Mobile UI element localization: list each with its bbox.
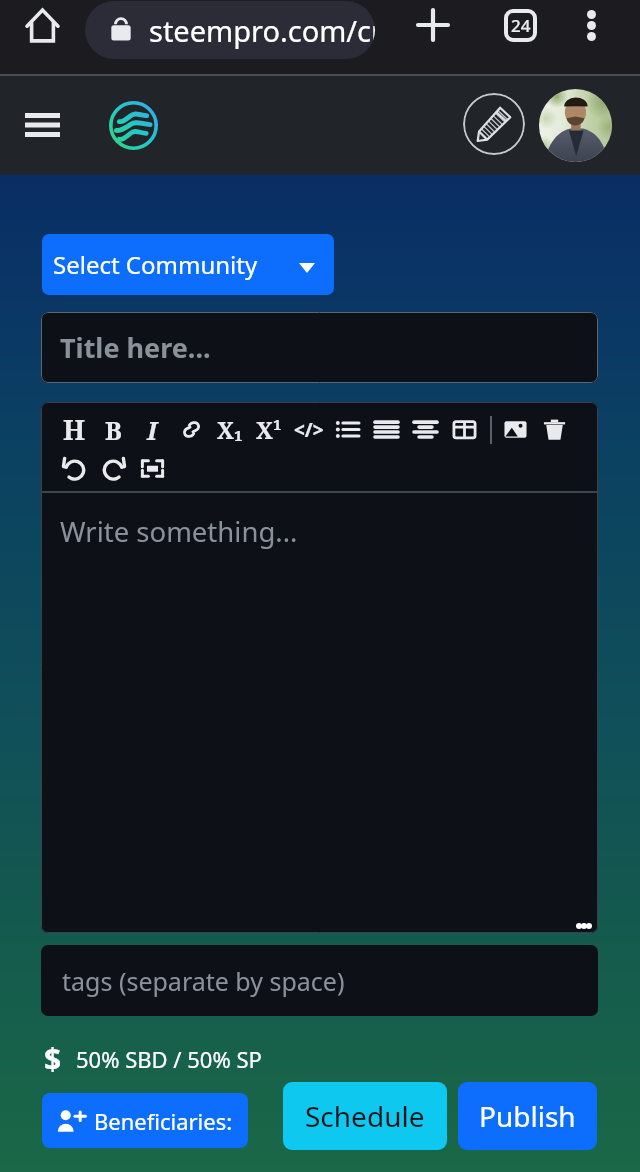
button[interactable]: Align center (406, 410, 445, 449)
button[interactable]: Menu (18, 101, 66, 149)
staticText: Title here... (60, 329, 211, 366)
staticText: Beneficiaries: (94, 1106, 233, 1136)
button[interactable]: More options (567, 1, 615, 49)
button[interactable]: New tab (409, 1, 457, 49)
button[interactable]: tags (separate by space) (41, 945, 598, 1016)
button[interactable]: Delete (535, 410, 574, 449)
staticText: I (147, 413, 158, 447)
staticText: Publish (479, 1097, 576, 1135)
button[interactable]: Home (18, 1, 66, 49)
button[interactable]: Link (172, 410, 211, 449)
staticText: Write something... (60, 513, 298, 550)
button[interactable]: Select Community (42, 234, 334, 295)
button[interactable]: Fullscreen (133, 449, 172, 488)
button[interactable]: X¹ (250, 410, 289, 449)
button[interactable]: </> (289, 410, 328, 449)
staticText: Select Community (53, 248, 258, 281)
button[interactable]: Insert image (496, 410, 535, 449)
button[interactable]: Bulleted list (328, 410, 367, 449)
button[interactable]: I (133, 410, 172, 449)
button[interactable]: H (55, 410, 94, 449)
button[interactable]: Tabs: 24 (496, 1, 544, 49)
staticText: X₁ (217, 414, 244, 445)
staticText: B (105, 413, 122, 447)
staticText: tags (separate by space) (62, 964, 345, 998)
button[interactable]: Undo (55, 449, 94, 488)
button[interactable]: Align justify (367, 410, 406, 449)
button[interactable]: Redo (94, 449, 133, 488)
staticText: 50% SBD / 50% SP (76, 1044, 262, 1074)
staticText: </> (294, 417, 324, 443)
button[interactable]: Schedule (283, 1082, 447, 1150)
button[interactable]: X₁ (211, 410, 250, 449)
staticText: steempro.com/cr (149, 11, 375, 50)
staticText: $ (44, 1038, 62, 1079)
staticText: Schedule (305, 1097, 425, 1135)
button[interactable]: Table (445, 410, 484, 449)
button[interactable]: Profile (539, 89, 612, 162)
button[interactable]: steempro.com/cr (85, 1, 375, 59)
button[interactable]: Title here... (41, 312, 598, 383)
staticText: H (63, 411, 86, 448)
staticText: 24 (511, 14, 531, 37)
button[interactable]: B (94, 410, 133, 449)
button[interactable]: SteemPro home (105, 97, 161, 153)
button[interactable]: Create post (463, 93, 525, 155)
button[interactable]: Publish (458, 1082, 597, 1150)
button[interactable]: Beneficiaries: (42, 1093, 248, 1148)
staticText: X¹ (256, 414, 283, 445)
